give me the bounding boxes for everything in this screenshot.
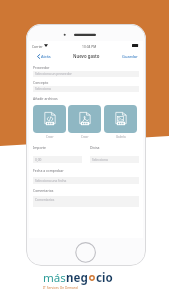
- staticText: 0,00: [35, 158, 42, 162]
- staticText: Concepto: [33, 80, 49, 85]
- staticText: 10:04 PM: [82, 44, 97, 48]
- staticText: Nuevo gasto: [73, 53, 100, 59]
- staticText: Carrier: [32, 44, 43, 48]
- staticText: Proveedor: [33, 65, 50, 70]
- staticText: Añadir archivos: [33, 96, 58, 101]
- staticText: Comentarios: [33, 188, 54, 193]
- staticText: Atrás: [41, 54, 51, 59]
- button[interactable]: Selecciona: [33, 86, 139, 92]
- button[interactable]: Crear: [33, 105, 66, 133]
- button[interactable]: Atrás: [37, 54, 51, 59]
- staticText: Selecciona un proveedor: [35, 72, 72, 76]
- button[interactable]: Guardar: [122, 54, 138, 59]
- staticText: Selecciona una fecha: [35, 179, 67, 183]
- button[interactable]: Galería: [104, 105, 137, 133]
- staticText: neg: [66, 270, 88, 286]
- staticText: Comentarios: [35, 198, 55, 202]
- staticText: o: [88, 270, 96, 286]
- button[interactable]: Selecciona: [90, 156, 139, 163]
- button[interactable]: Selecciona una fecha: [33, 177, 139, 184]
- staticText: más: [43, 270, 66, 286]
- staticText: Galería: [116, 135, 126, 139]
- staticText: Divisa: [90, 145, 100, 150]
- button[interactable]: Comentarios: [33, 196, 139, 207]
- button[interactable]: 0,00: [33, 156, 82, 163]
- staticText: IT Services On Demand: [43, 286, 78, 290]
- staticText: Fecha a comprobar: [33, 168, 64, 173]
- staticText: Selecciona: [92, 158, 108, 162]
- button[interactable]: Selecciona un proveedor: [33, 71, 139, 77]
- staticText: Crear: [46, 135, 54, 139]
- staticText: Importe: [33, 145, 46, 150]
- staticText: cio: [96, 270, 113, 286]
- staticText: Selecciona: [35, 87, 51, 91]
- button[interactable]: Crear: [68, 105, 101, 133]
- staticText: Crear: [81, 135, 89, 139]
